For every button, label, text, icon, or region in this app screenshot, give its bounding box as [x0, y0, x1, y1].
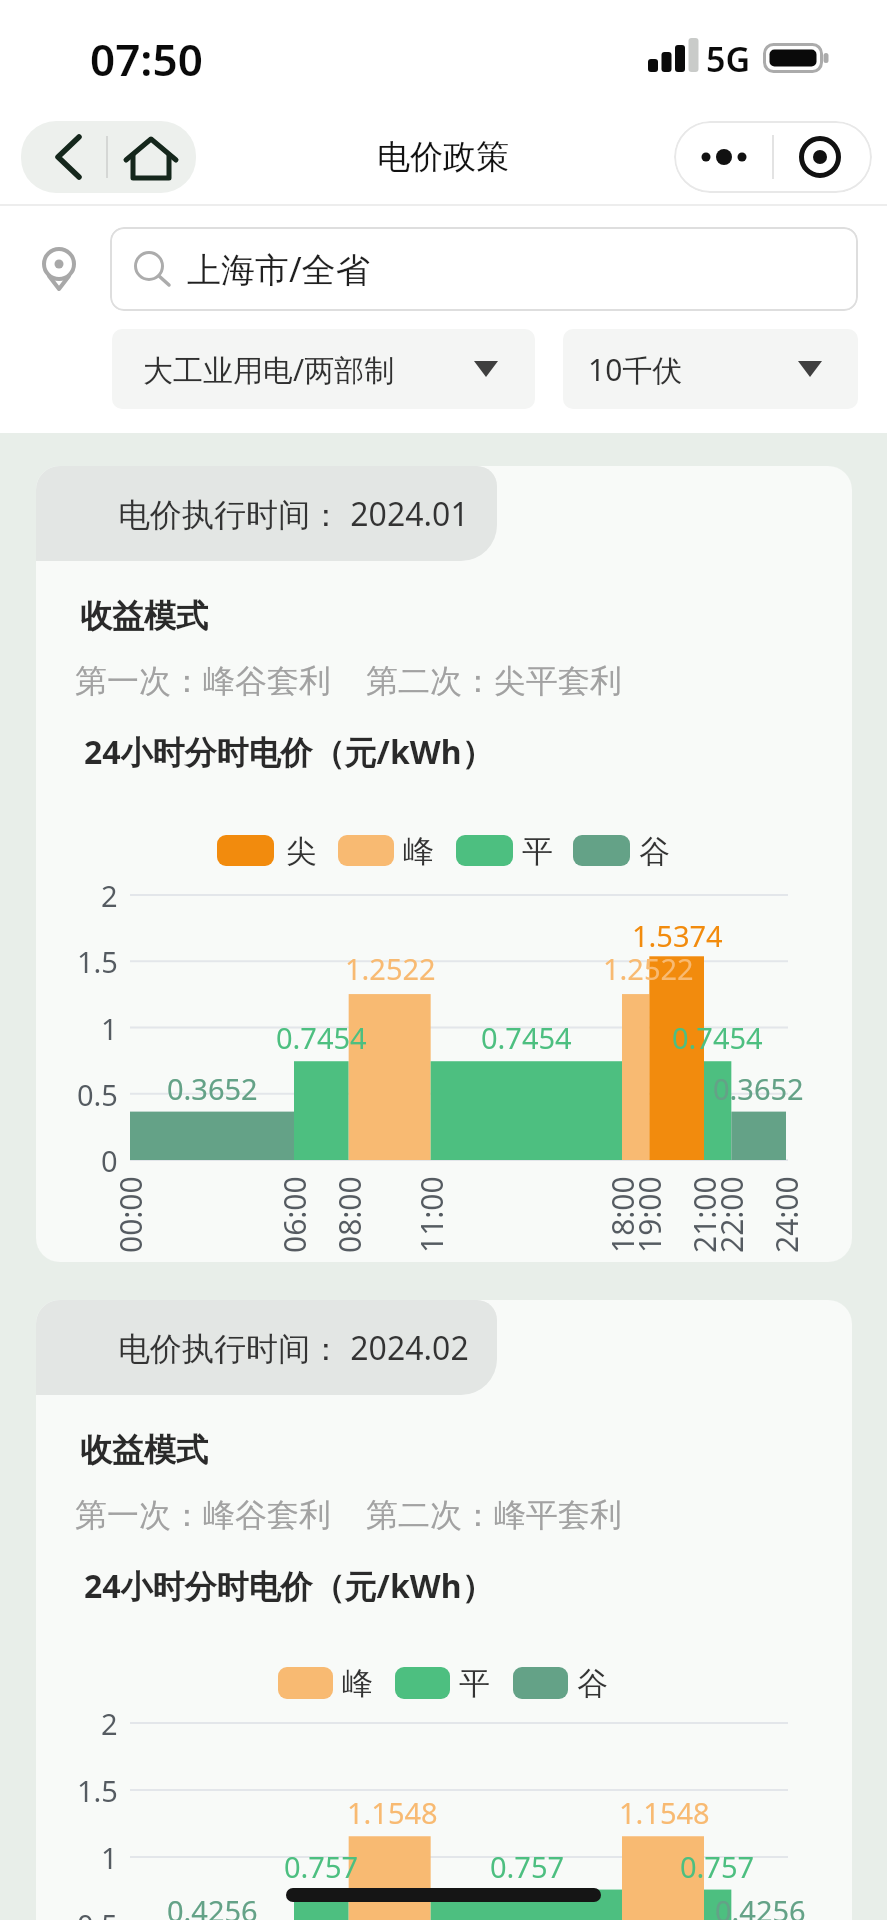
- staticText: 峰: [403, 832, 434, 871]
- staticText: 11:00: [411, 1176, 452, 1253]
- staticText: 峰: [342, 1664, 373, 1703]
- staticText: 1: [101, 1009, 118, 1048]
- staticText: 平: [459, 1664, 490, 1703]
- staticText: 收益模式: [80, 596, 208, 636]
- staticText: 平: [522, 832, 553, 871]
- staticText: 18:00: [602, 1176, 643, 1253]
- staticText: 0.7454: [672, 1018, 763, 1057]
- staticText: 大工业用电/两部制: [143, 349, 395, 390]
- staticText: 5G: [706, 36, 751, 82]
- staticText: 谷: [577, 1664, 608, 1703]
- staticText: 24小时分时电价（元/kWh）: [84, 1564, 494, 1608]
- staticText: 08:00: [329, 1176, 370, 1253]
- staticText: 0.757: [680, 1847, 755, 1886]
- staticText: 电价执行时间： 2024.01: [118, 492, 469, 536]
- staticText: 19:00: [629, 1176, 670, 1253]
- staticText: 0.4256: [167, 1891, 258, 1920]
- staticText: 0.7454: [276, 1018, 367, 1057]
- staticText: 0.3652: [167, 1069, 258, 1108]
- staticText: 尖: [286, 832, 317, 871]
- staticText: 21:00: [684, 1176, 725, 1253]
- staticText: 上海市/全省: [187, 246, 370, 292]
- staticText: 00:00: [110, 1176, 151, 1253]
- staticText: 22:00: [711, 1176, 752, 1253]
- staticText: 0.7454: [481, 1018, 572, 1057]
- staticText: 电价政策: [377, 136, 509, 178]
- button[interactable]: [674, 121, 872, 193]
- staticText: 0.3652: [713, 1069, 804, 1108]
- staticText: 24:00: [766, 1176, 807, 1253]
- staticText: 07:50: [90, 29, 203, 89]
- staticText: 1.2522: [345, 949, 436, 988]
- staticText: 1.5: [77, 1771, 118, 1810]
- staticText: 06:00: [274, 1176, 315, 1253]
- staticText: 1.5: [77, 942, 118, 981]
- staticText: 谷: [639, 832, 670, 871]
- button[interactable]: 大工业用电/两部制: [112, 329, 535, 409]
- staticText: 1.2522: [603, 949, 694, 988]
- staticText: 0.4256: [715, 1891, 806, 1920]
- staticText: 1.1548: [347, 1793, 438, 1832]
- staticText: 收益模式: [80, 1430, 208, 1470]
- staticText: 0.5: [77, 1905, 118, 1920]
- staticText: 0.5: [77, 1075, 118, 1114]
- staticText: 0.757: [284, 1847, 359, 1886]
- staticText: 24小时分时电价（元/kWh）: [84, 730, 494, 774]
- staticText: 1.1548: [619, 1793, 710, 1832]
- button[interactable]: 10千伏: [563, 329, 858, 409]
- button[interactable]: 上海市/全省: [110, 227, 858, 311]
- staticText: 第一次：峰谷套利: [75, 661, 331, 701]
- staticText: 第二次：尖平套利: [366, 661, 622, 701]
- staticText: 2: [101, 876, 118, 915]
- staticText: 2: [101, 1704, 118, 1743]
- staticText: 电价执行时间： 2024.02: [118, 1326, 469, 1370]
- staticText: 第一次：峰谷套利: [75, 1495, 331, 1535]
- staticText: 0.757: [490, 1847, 565, 1886]
- staticText: 1: [101, 1838, 118, 1877]
- button[interactable]: [21, 121, 196, 193]
- staticText: 10千伏: [588, 349, 683, 390]
- staticText: 第二次：峰平套利: [366, 1495, 622, 1535]
- staticText: 1.5374: [632, 916, 723, 955]
- staticText: 0: [101, 1141, 118, 1180]
